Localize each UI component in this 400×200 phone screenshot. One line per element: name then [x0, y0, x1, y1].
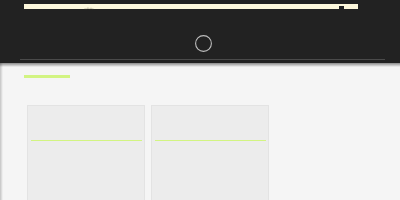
- button[interactable]: Second card: [151, 105, 269, 200]
- button[interactable]: Address bar: [24, 4, 358, 9]
- button[interactable]: Record: [195, 35, 212, 52]
- button[interactable]: First card: [27, 105, 145, 200]
